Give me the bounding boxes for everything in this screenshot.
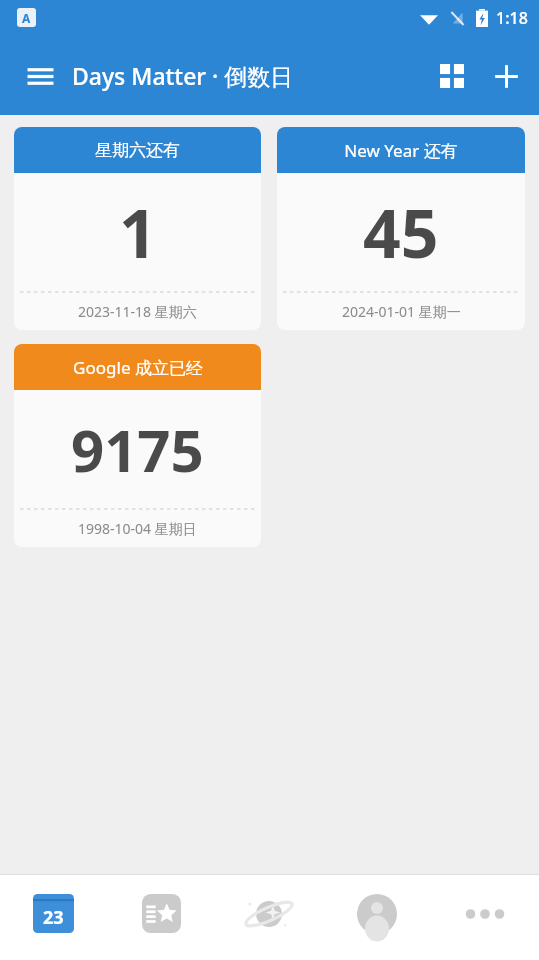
button[interactable]: More options	[431, 875, 539, 960]
button[interactable]: Collections	[107, 875, 215, 960]
button[interactable]: Switch layout	[425, 49, 479, 103]
staticText: 星期六还有	[95, 140, 180, 161]
button[interactable]: Open navigation menu	[16, 52, 64, 100]
button[interactable]: Google 成立已经	[14, 344, 261, 547]
button[interactable]: New Year 还有	[277, 127, 525, 330]
button[interactable]: Discover	[215, 875, 323, 960]
button[interactable]: Profile	[323, 875, 431, 960]
button[interactable]: Countdowns	[0, 875, 107, 960]
staticText: 23	[43, 905, 64, 930]
staticText: New Year 还有	[344, 139, 458, 162]
staticText: 2023-11-18 星期六	[78, 302, 197, 321]
staticText: 1	[119, 187, 157, 277]
button[interactable]: 星期六还有	[14, 127, 261, 330]
staticText: A	[22, 10, 31, 26]
staticText: 2024-01-01 星期一	[342, 302, 461, 321]
staticText: 45	[363, 187, 439, 277]
staticText: Days Matter · 倒数日	[72, 60, 294, 91]
button[interactable]: Add countdown	[479, 49, 533, 103]
staticText: 9175	[71, 410, 204, 489]
staticText: Google 成立已经	[73, 356, 203, 379]
staticText: 1:18	[496, 7, 528, 29]
staticText: 1998-10-04 星期日	[78, 519, 197, 538]
